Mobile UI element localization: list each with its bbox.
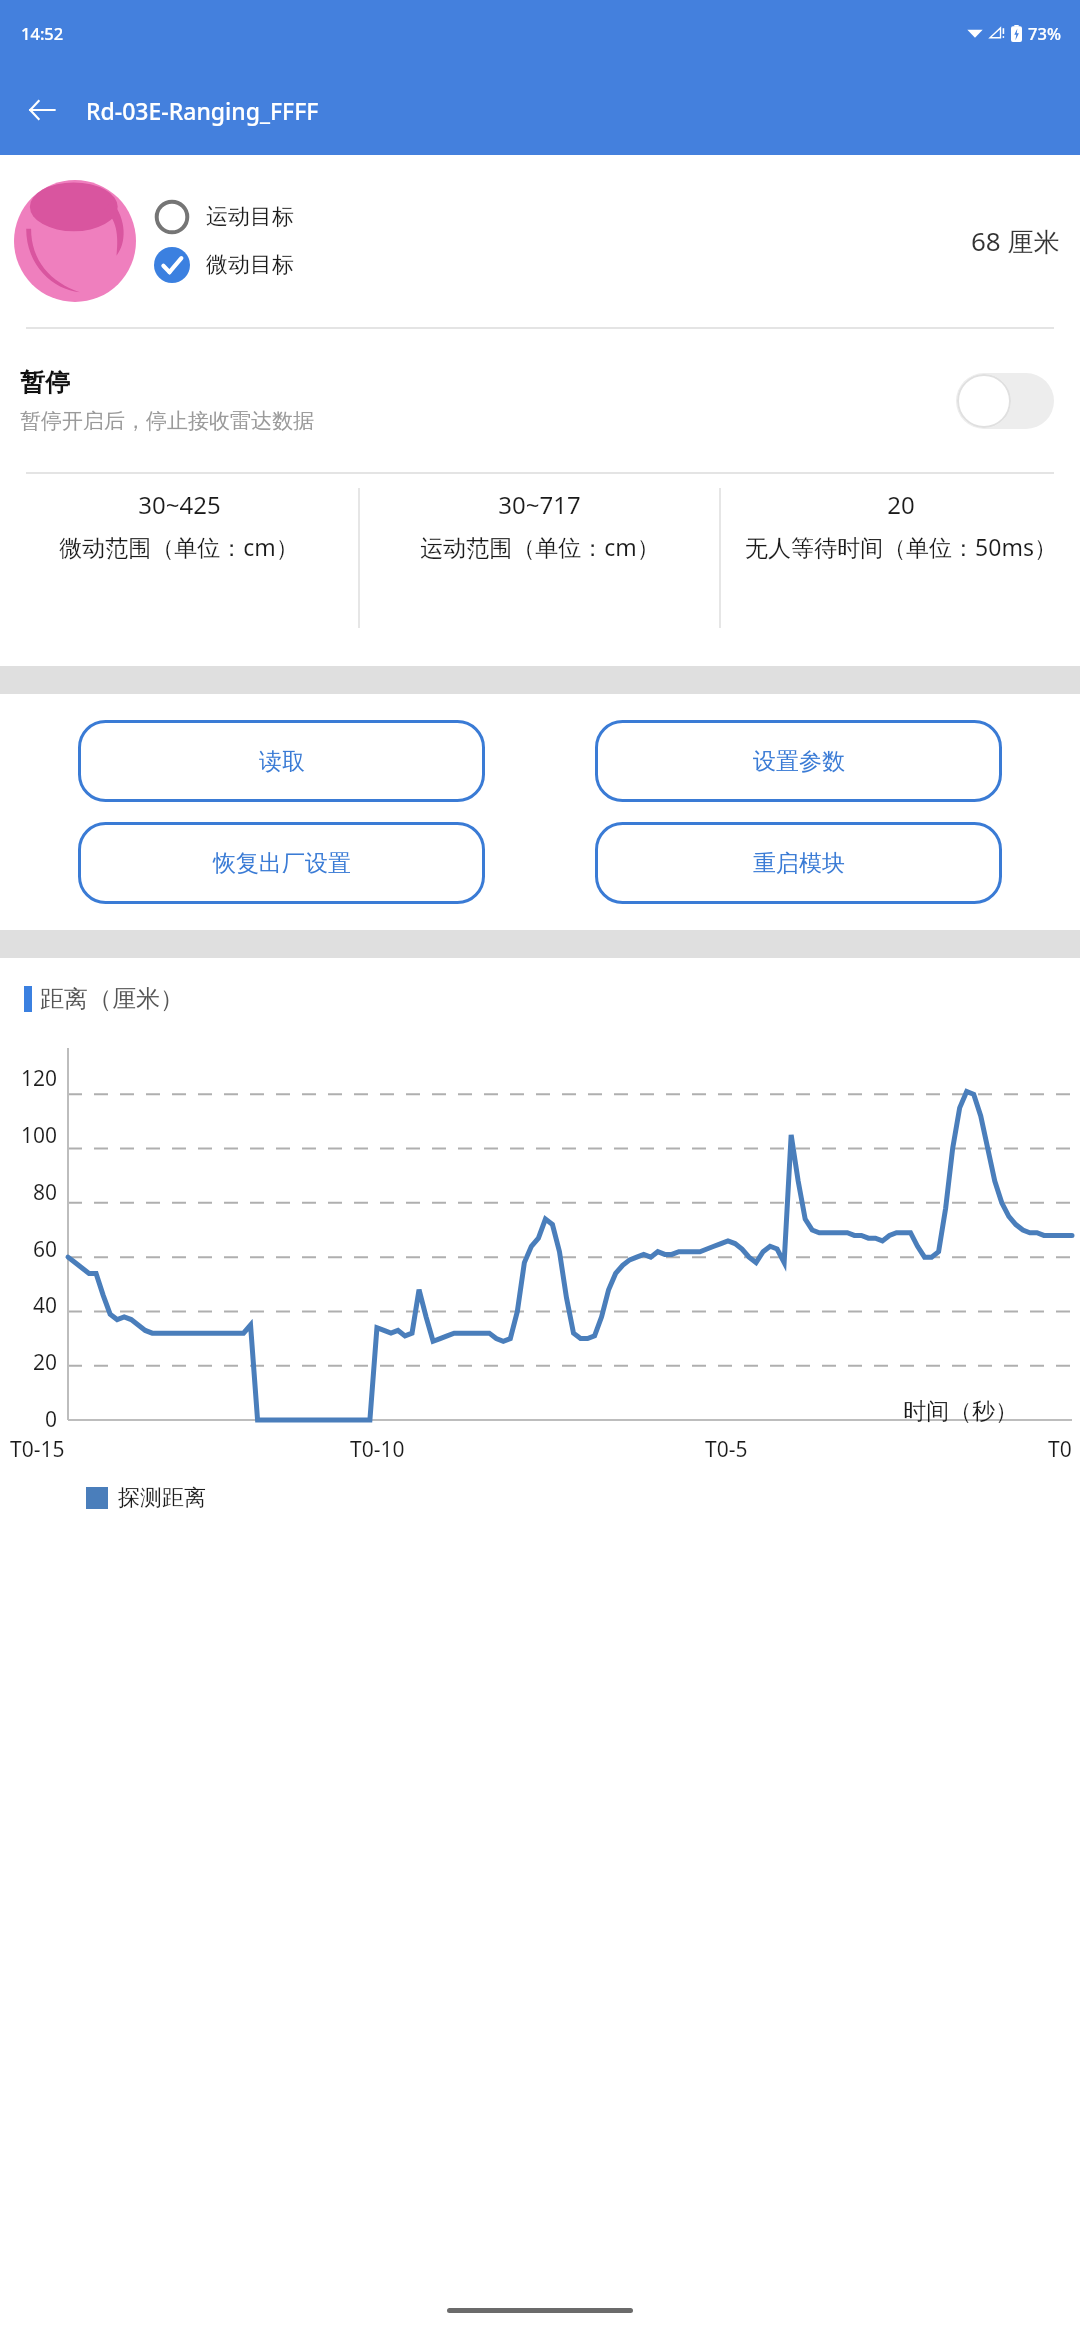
staticText: 恢复出厂设置 xyxy=(213,849,351,878)
staticText: 30~425 xyxy=(138,488,221,521)
staticText: 运动范围（单位：cm） xyxy=(420,531,660,562)
staticText: 暂停开启后，停止接收雷达数据 xyxy=(20,408,314,434)
staticText: 读取 xyxy=(259,747,305,776)
staticText: 设置参数 xyxy=(753,747,845,776)
button[interactable]: 读取 xyxy=(78,720,485,802)
staticText: 120 xyxy=(21,1064,58,1093)
staticText: 0 xyxy=(45,1405,58,1434)
staticText: 无人等待时间（单位：50ms） xyxy=(745,531,1057,562)
staticText: 微动范围（单位：cm） xyxy=(59,531,299,562)
staticText: 14:52 xyxy=(21,22,64,44)
staticText: 探测距离 xyxy=(118,1484,206,1512)
button[interactable]: 运动目标 xyxy=(154,199,294,235)
button[interactable]: 重启模块 xyxy=(595,822,1002,904)
staticText: T0-15 xyxy=(10,1435,65,1464)
button[interactable]: 暂停 xyxy=(20,329,1054,472)
staticText: 微动目标 xyxy=(206,251,294,279)
staticText: 20 xyxy=(887,488,915,521)
staticText: Rd-03E-Ranging_FFFF xyxy=(86,95,319,126)
staticText: 20 xyxy=(33,1348,58,1377)
staticText: 暂停 xyxy=(20,367,70,398)
staticText: 68 厘米 xyxy=(971,223,1060,259)
staticText: 100 xyxy=(21,1121,58,1150)
staticText: T0-5 xyxy=(705,1435,748,1464)
button[interactable]: 恢复出厂设置 xyxy=(78,822,485,904)
staticText: 运动目标 xyxy=(206,203,294,231)
staticText: 距离（厘米） xyxy=(40,984,184,1014)
button[interactable]: 微动目标 xyxy=(154,247,294,283)
staticText: 73% xyxy=(1028,22,1061,44)
staticText: 30~717 xyxy=(498,488,581,521)
staticText: T0-10 xyxy=(350,1435,405,1464)
staticText: 60 xyxy=(33,1235,58,1264)
button[interactable]: Back xyxy=(14,82,70,138)
staticText: 时间（秒） xyxy=(903,1397,1018,1426)
staticText: T0 xyxy=(1048,1435,1072,1464)
button[interactable]: 设置参数 xyxy=(595,720,1002,802)
staticText: 重启模块 xyxy=(753,849,845,878)
staticText: 80 xyxy=(33,1178,58,1207)
staticText: 40 xyxy=(33,1291,58,1320)
